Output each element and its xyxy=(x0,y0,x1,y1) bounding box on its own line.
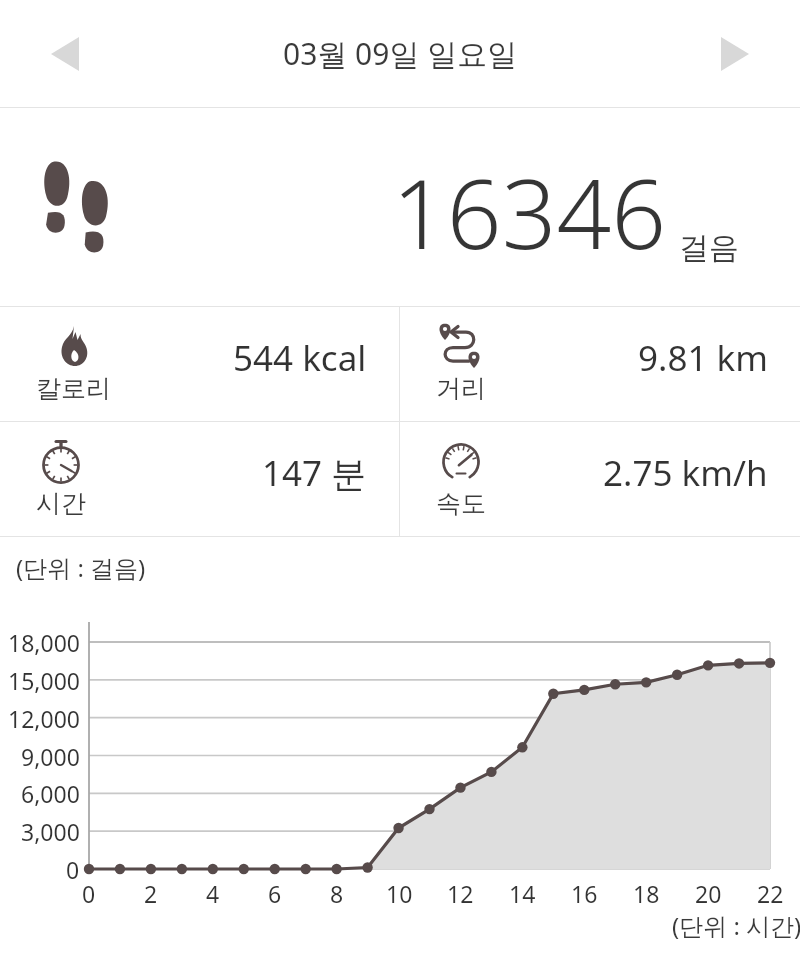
staticText: 03월 09일 일요일 xyxy=(283,33,518,74)
staticText: 18 xyxy=(633,878,660,909)
staticText: 20 xyxy=(695,878,722,909)
staticText: 10 xyxy=(386,878,413,909)
button[interactable]: Next day xyxy=(706,25,764,83)
staticText: 544 kcal xyxy=(233,334,367,382)
staticText: 12 xyxy=(447,878,474,909)
staticText: 거리 xyxy=(436,373,486,404)
staticText: 15,000 xyxy=(8,665,80,696)
staticText: 14 xyxy=(509,878,536,909)
button[interactable]: 칼로리 xyxy=(0,307,399,421)
staticText: 3,000 xyxy=(21,816,80,847)
staticText: 2.75 km/h xyxy=(603,449,768,497)
staticText: (단위 : 걸음) xyxy=(16,551,146,584)
staticText: 18,000 xyxy=(8,627,80,658)
staticText: 9.81 km xyxy=(638,334,768,382)
staticText: (단위 : 시간) xyxy=(672,909,800,942)
staticText: 16346 xyxy=(392,146,667,277)
button[interactable]: Previous day xyxy=(36,25,94,83)
staticText: 6,000 xyxy=(21,778,80,809)
staticText: 걸음 xyxy=(679,229,739,267)
button[interactable]: 거리 xyxy=(400,307,800,421)
staticText: 칼로리 xyxy=(36,373,111,404)
staticText: 22 xyxy=(757,878,784,909)
staticText: 147 분 xyxy=(262,449,367,497)
button[interactable]: 16346 xyxy=(0,108,800,306)
staticText: 6 xyxy=(268,878,282,909)
staticText: 4 xyxy=(206,878,220,909)
staticText: 12,000 xyxy=(8,703,80,734)
staticText: 16 xyxy=(571,878,598,909)
staticText: 0 xyxy=(66,854,80,885)
staticText: 8 xyxy=(330,878,344,909)
staticText: 속도 xyxy=(436,488,486,519)
button[interactable]: 속도 xyxy=(400,422,800,536)
staticText: 시간 xyxy=(36,488,86,519)
button[interactable]: 시간 xyxy=(0,422,399,536)
staticText: 9,000 xyxy=(21,741,80,772)
staticText: 0 xyxy=(82,878,96,909)
staticText: 2 xyxy=(144,878,158,909)
